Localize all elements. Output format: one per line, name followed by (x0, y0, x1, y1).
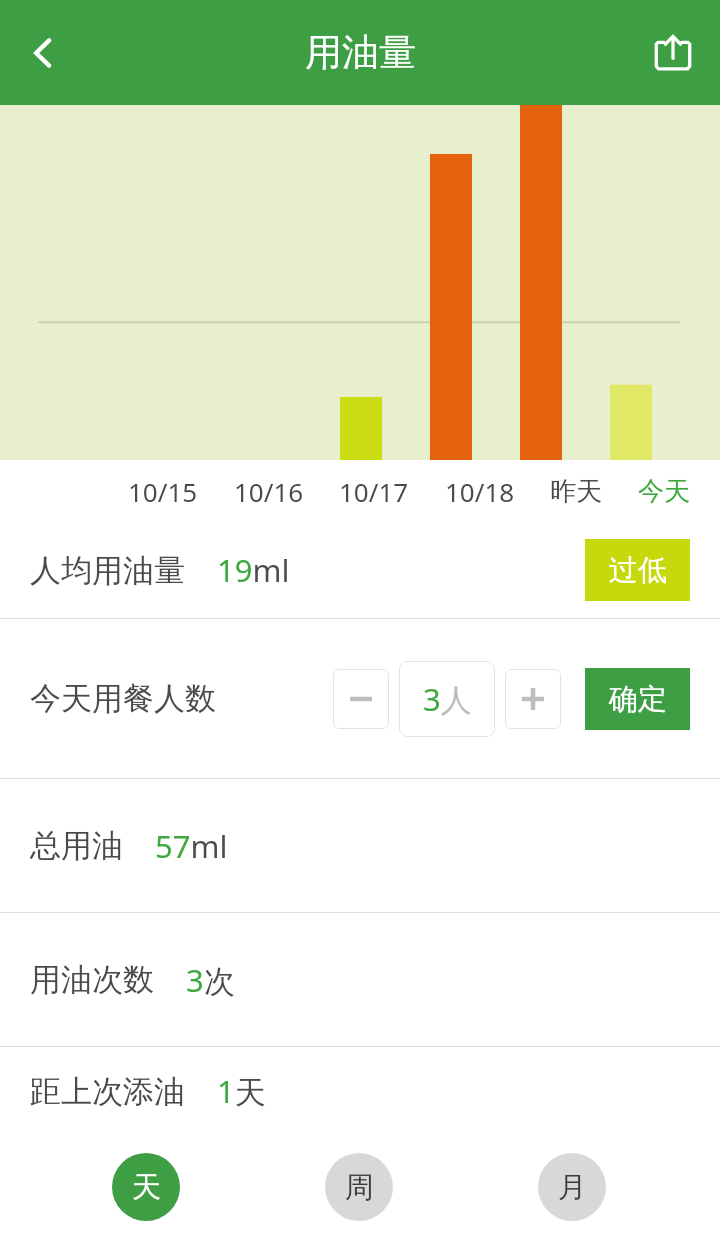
staticText: 天 (132, 1169, 161, 1206)
staticText: 月 (558, 1169, 587, 1206)
button[interactable]: 人均用油量 (0, 522, 720, 618)
button[interactable]: 总用油 (0, 779, 720, 912)
button[interactable]: Decrease (333, 669, 389, 729)
staticText: 10/17 (339, 474, 409, 509)
button[interactable]: 天 (112, 1153, 180, 1221)
staticText: 周 (345, 1169, 374, 1206)
staticText: 10/16 (234, 474, 304, 509)
staticText: 1天 (217, 1070, 266, 1112)
button[interactable]: Share (638, 18, 708, 88)
staticText: 确定 (609, 681, 667, 718)
button[interactable]: 用油次数 (0, 913, 720, 1046)
button[interactable]: 确定 (585, 668, 690, 730)
button[interactable]: 周 (325, 1153, 393, 1221)
staticText: 10/18 (445, 474, 515, 509)
staticText: 总用油 (30, 826, 123, 865)
staticText: 3人 (423, 678, 472, 720)
staticText: 过低 (609, 552, 667, 589)
staticText: 57ml (155, 825, 228, 867)
staticText: 用油次数 (30, 960, 154, 999)
button[interactable]: 3人 (399, 661, 495, 737)
staticText: 3次 (186, 959, 235, 1001)
button[interactable]: Increase (505, 669, 561, 729)
staticText: 用油量 (305, 29, 416, 76)
button[interactable]: 过低 (585, 539, 690, 601)
button[interactable]: 距上次添油 (0, 1047, 720, 1135)
staticText: 人均用油量 (30, 551, 185, 590)
staticText: 19ml (217, 549, 290, 591)
staticText: 今天 (638, 475, 690, 508)
button[interactable]: 月 (538, 1153, 606, 1221)
button[interactable]: Back (8, 18, 78, 88)
staticText: 昨天 (550, 475, 602, 508)
staticText: 距上次添油 (30, 1072, 185, 1111)
staticText: 今天用餐人数 (30, 679, 216, 718)
staticText: 10/15 (128, 474, 198, 509)
